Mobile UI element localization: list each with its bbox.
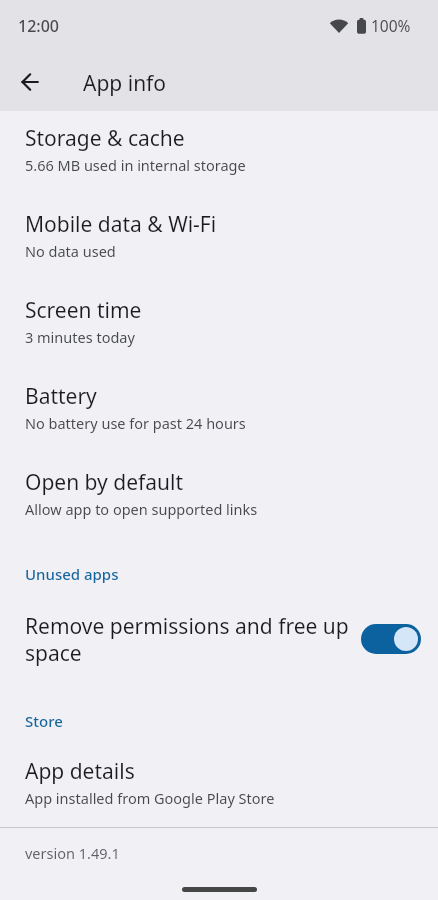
staticText: No data used <box>25 241 116 261</box>
staticText: Allow app to open supported links <box>25 499 258 519</box>
button[interactable]: Mobile data & Wi-Fi <box>0 198 438 284</box>
button[interactable] <box>361 624 421 654</box>
staticText: App info <box>83 69 167 97</box>
staticText: Open by default <box>25 468 184 497</box>
button[interactable]: Storage & cache <box>0 112 438 198</box>
staticText: 12:00 <box>18 15 59 35</box>
staticText: version 1.49.1 <box>25 843 120 863</box>
staticText: Remove permissions and free up space <box>25 612 349 667</box>
button[interactable]: Screen time <box>0 284 438 370</box>
button[interactable] <box>12 64 48 100</box>
staticText: Mobile data & Wi-Fi <box>25 210 217 239</box>
staticText: Storage & cache <box>25 124 185 153</box>
staticText: Battery <box>25 382 97 411</box>
staticText: 100% <box>371 15 411 35</box>
staticText: 5.66 MB used in internal storage <box>25 155 246 175</box>
staticText: Unused apps <box>25 564 119 584</box>
staticText: No battery use for past 24 hours <box>25 413 246 433</box>
staticText: Screen time <box>25 296 142 325</box>
button[interactable]: Open by default <box>0 456 438 542</box>
staticText: Store <box>25 711 63 731</box>
staticText: App details <box>25 757 135 786</box>
staticText: App installed from Google Play Store <box>25 788 275 808</box>
button[interactable]: App details <box>0 745 438 825</box>
button[interactable]: Battery <box>0 370 438 456</box>
button[interactable]: Remove permissions and free up space <box>0 605 438 673</box>
staticText: 3 minutes today <box>25 327 135 347</box>
